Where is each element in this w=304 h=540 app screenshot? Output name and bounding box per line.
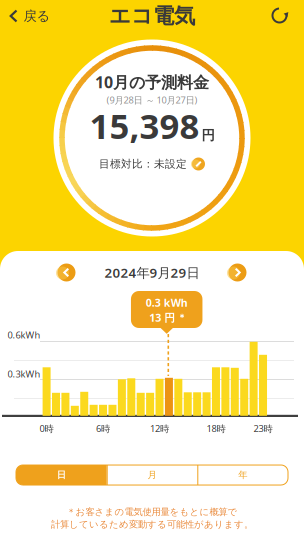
staticText: 6時 bbox=[96, 422, 110, 435]
button[interactable]: 次の日 bbox=[228, 263, 246, 281]
staticText: 23時 bbox=[253, 422, 272, 435]
button[interactable]: 月 bbox=[107, 465, 197, 485]
staticText: エコ電気 bbox=[109, 3, 195, 29]
staticText: 目標対比：未設定 bbox=[99, 157, 187, 170]
staticText: 18時 bbox=[206, 422, 225, 435]
staticText: 円 bbox=[201, 127, 214, 143]
staticText: 2024年9月29日 bbox=[104, 264, 199, 281]
staticText: 15,398 bbox=[89, 102, 199, 148]
button[interactable]: 日 bbox=[16, 465, 107, 485]
staticText: 0時 bbox=[40, 422, 54, 435]
staticText: 年 bbox=[238, 469, 247, 481]
button[interactable]: 戻る bbox=[9, 8, 50, 24]
staticText: 戻る bbox=[23, 8, 50, 24]
staticText: 日 bbox=[57, 469, 66, 481]
staticText: 12時 bbox=[150, 422, 169, 435]
staticText: ＊お客さまの電気使用量をもとに概算で bbox=[66, 506, 237, 518]
button[interactable]: 年 bbox=[197, 465, 288, 485]
staticText: 0.3 kWh bbox=[146, 295, 188, 310]
staticText: 0.3kWh bbox=[7, 368, 40, 380]
button[interactable]: 目標を設定 bbox=[192, 157, 205, 170]
staticText: 13 円 bbox=[149, 310, 175, 325]
staticText: 0.6kWh bbox=[7, 329, 40, 341]
button[interactable]: 更新 bbox=[271, 7, 288, 24]
button[interactable]: 前の日 bbox=[57, 263, 75, 281]
staticText: (9月28日 ～ 10月27日) bbox=[106, 94, 197, 106]
staticText: 計算しているため変動する可能性があります。 bbox=[51, 519, 253, 530]
staticText: 10月の予測料金 bbox=[95, 71, 209, 93]
staticText: ＊ bbox=[177, 312, 186, 323]
staticText: 月 bbox=[147, 469, 156, 481]
